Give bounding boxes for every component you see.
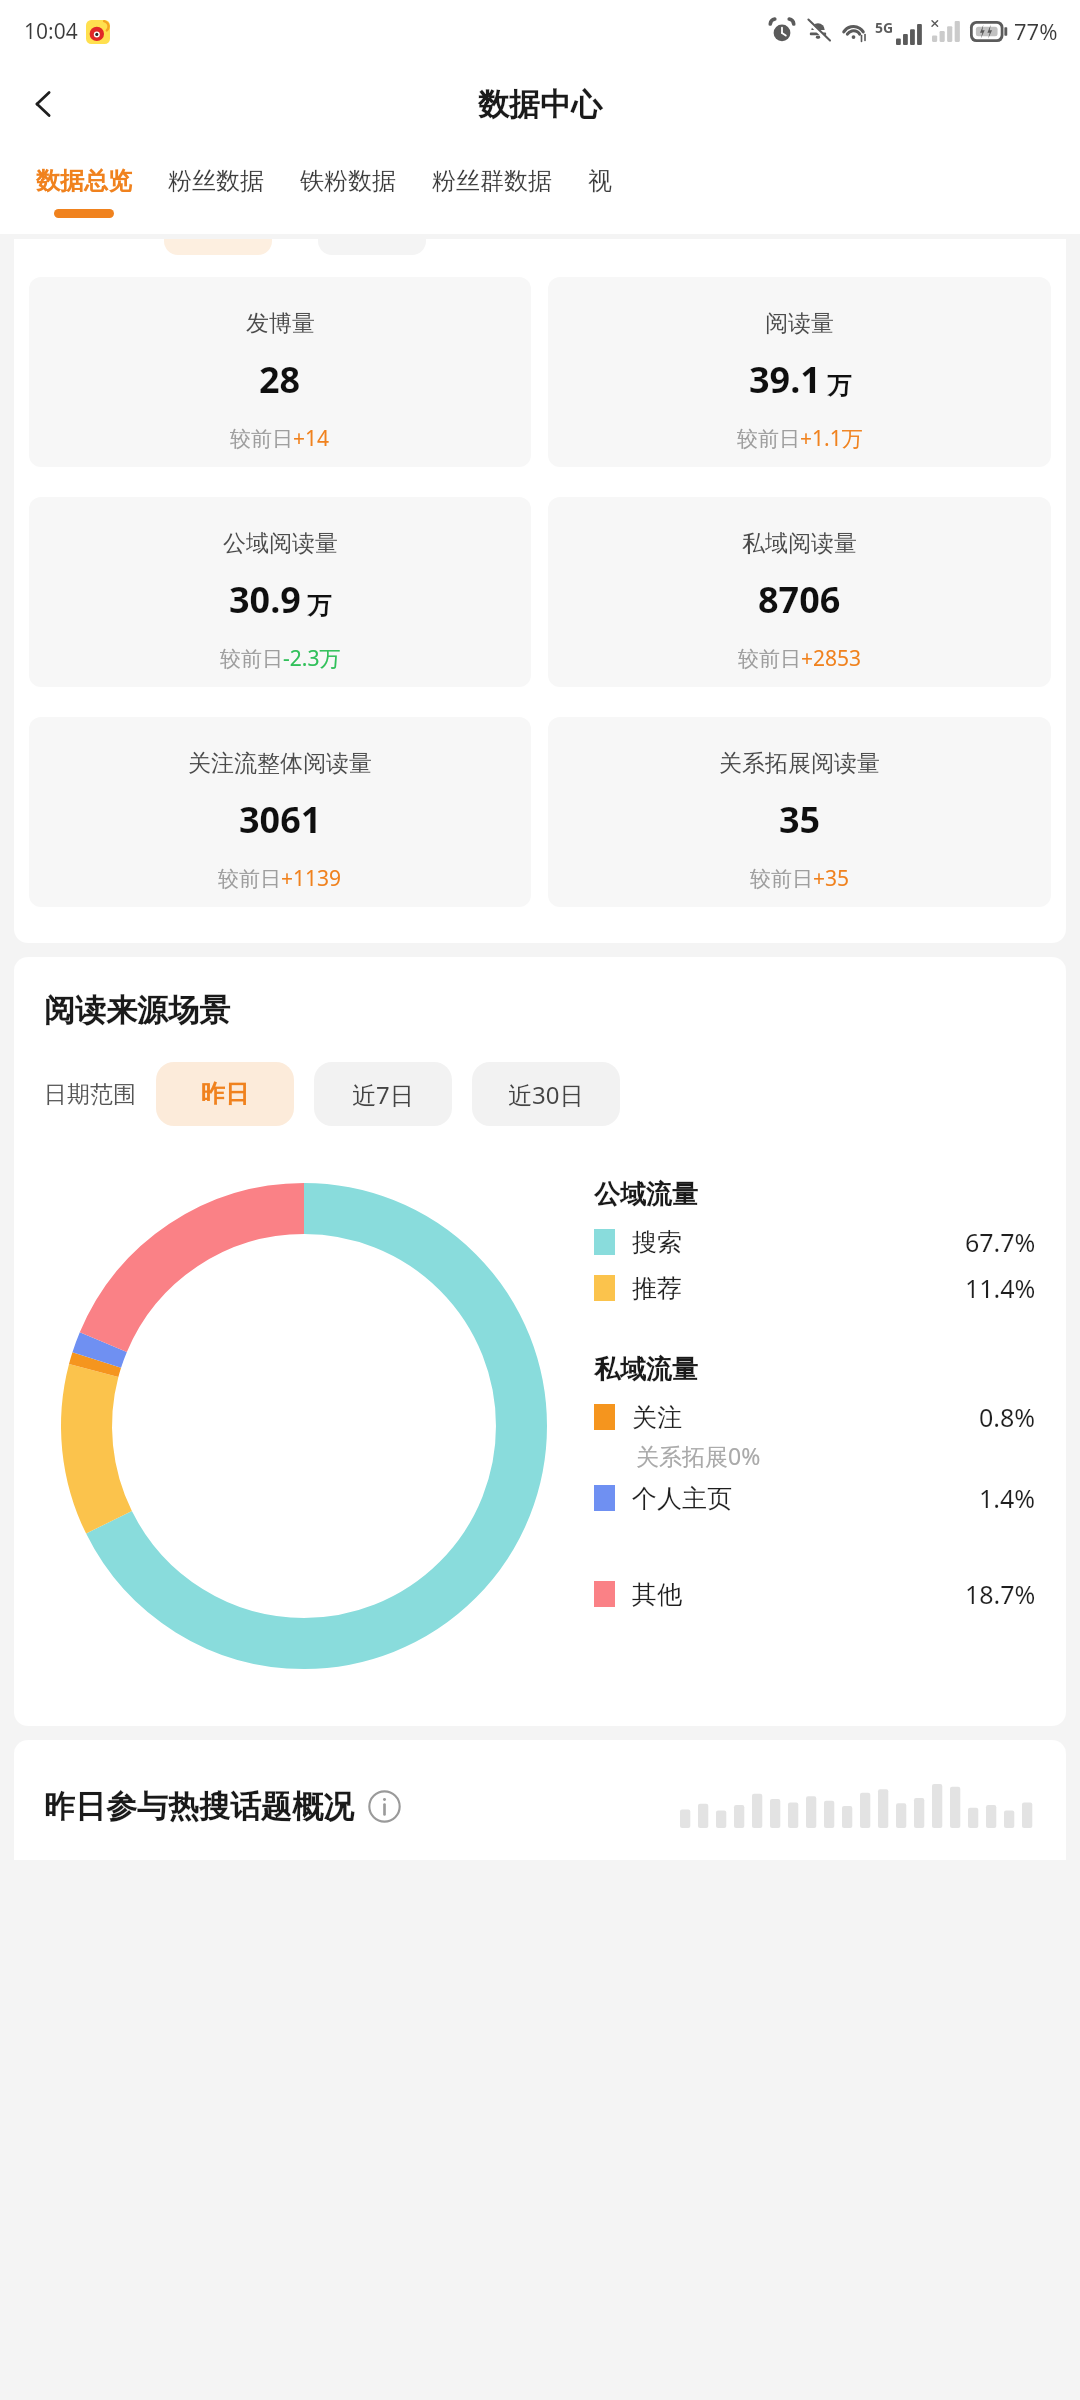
staticText: 视	[588, 166, 612, 196]
staticText: 昨日	[201, 1079, 249, 1109]
staticText: 关系拓展阅读量	[719, 749, 880, 778]
button[interactable]: 个人主页	[594, 1481, 1036, 1515]
staticText: 发博量	[246, 309, 315, 338]
button[interactable]: 私域阅读量	[548, 497, 1051, 687]
button[interactable]: 视	[570, 146, 630, 234]
staticText: 万	[307, 591, 331, 621]
staticText: 18.7%	[965, 1577, 1036, 1611]
staticText: 数据总览	[36, 166, 132, 196]
button[interactable]: 关注流整体阅读量	[29, 717, 531, 907]
staticText: 关注	[632, 1402, 682, 1433]
staticText: 8706	[758, 575, 841, 624]
button[interactable]: Info	[366, 1788, 402, 1824]
staticText: 较前日-2.3万	[220, 644, 341, 673]
staticText: 1.4%	[979, 1481, 1036, 1515]
button[interactable]: 粉丝群数据	[414, 146, 570, 234]
staticText: 其他	[632, 1579, 682, 1610]
staticText: 私域阅读量	[742, 529, 857, 558]
staticText: 万	[827, 371, 851, 401]
staticText: 较前日+1139	[218, 864, 342, 893]
staticText: 私域流量	[594, 1353, 698, 1386]
button[interactable]: Back	[12, 72, 76, 136]
staticText: 粉丝群数据	[432, 166, 552, 196]
staticText: 公域流量	[594, 1178, 698, 1211]
staticText: 关系拓展0%	[636, 1440, 761, 1471]
staticText: 3061	[239, 795, 322, 844]
staticText: 关注流整体阅读量	[188, 749, 372, 778]
staticText: 77%	[1014, 16, 1058, 46]
button[interactable]: 关系拓展阅读量	[548, 717, 1051, 907]
staticText: 5G	[875, 18, 894, 37]
button[interactable]: 公域阅读量	[29, 497, 531, 687]
staticText: 数据中心	[478, 85, 602, 124]
staticText: 个人主页	[632, 1483, 732, 1514]
staticText: 公域阅读量	[223, 529, 338, 558]
staticText: 较前日+1.1万	[737, 424, 863, 453]
staticText: 11.4%	[965, 1271, 1036, 1305]
staticText: 日期范围	[44, 1080, 136, 1109]
button[interactable]: 铁粉数据	[282, 146, 414, 234]
button[interactable]: 阅读量	[548, 277, 1051, 467]
button[interactable]: 关注	[594, 1400, 1036, 1434]
button[interactable]: 发博量	[29, 277, 531, 467]
staticText: 昨日参与热搜话题概况	[44, 1787, 354, 1826]
staticText: 10:04	[24, 17, 78, 46]
staticText: 67.7%	[965, 1225, 1036, 1259]
button[interactable]: 其他	[594, 1577, 1036, 1611]
staticText: 28	[259, 355, 301, 404]
staticText: 较前日+2853	[738, 644, 862, 673]
staticText: 阅读量	[765, 309, 834, 338]
button[interactable]: 推荐	[594, 1271, 1036, 1305]
button[interactable]: 近30日	[472, 1062, 620, 1126]
staticText: 搜索	[632, 1227, 682, 1258]
staticText: 较前日+35	[750, 864, 850, 893]
staticText: 近30日	[508, 1078, 584, 1111]
button[interactable]: 搜索	[594, 1225, 1036, 1259]
staticText: 39.1	[749, 355, 821, 404]
staticText: 阅读来源场景	[44, 991, 230, 1030]
staticText: 铁粉数据	[300, 166, 396, 196]
staticText: 30.9	[229, 575, 301, 624]
button[interactable]: 近7日	[314, 1062, 452, 1126]
staticText: 近7日	[352, 1078, 414, 1111]
staticText: 粉丝数据	[168, 166, 264, 196]
button[interactable]: 数据总览	[18, 146, 150, 234]
staticText: 推荐	[632, 1273, 682, 1304]
button[interactable]: 昨日	[156, 1062, 294, 1126]
staticText: 较前日+14	[230, 424, 330, 453]
staticText: 0.8%	[979, 1400, 1036, 1434]
staticText: 35	[779, 795, 821, 844]
button[interactable]: 粉丝数据	[150, 146, 282, 234]
